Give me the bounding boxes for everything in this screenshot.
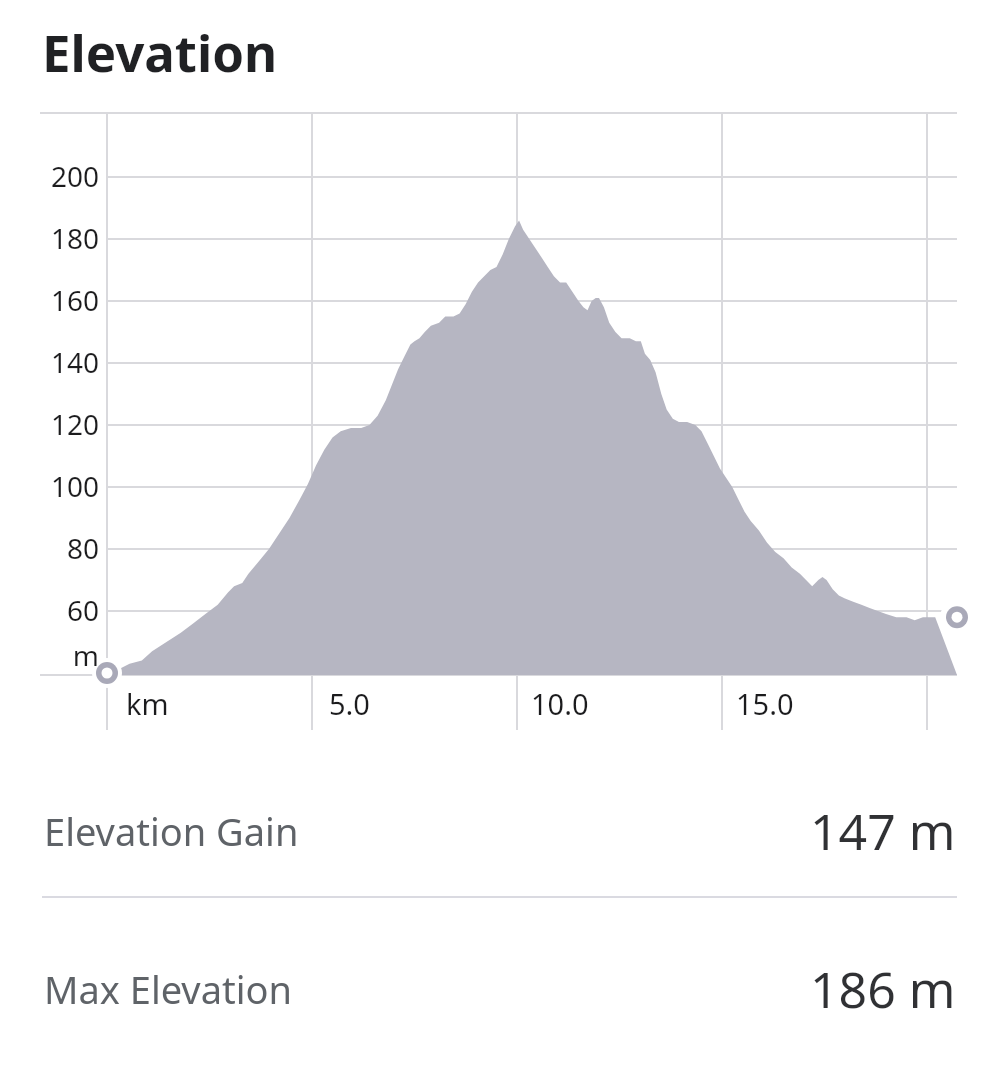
staticText: 100 xyxy=(0,467,99,505)
staticText: 10.0 xyxy=(531,684,589,723)
staticText: m xyxy=(0,636,99,674)
staticText: 15.0 xyxy=(736,684,794,723)
staticText: 180 xyxy=(0,219,99,257)
staticText: 186 m xyxy=(810,955,956,1023)
staticText: 80 xyxy=(0,529,99,567)
staticText: 5.0 xyxy=(329,684,370,723)
staticText: Max Elevation xyxy=(44,963,292,1015)
button[interactable]: Max Elevation xyxy=(0,899,1000,1079)
staticText: 160 xyxy=(0,281,99,319)
staticText: Elevation xyxy=(42,17,278,86)
staticText: km xyxy=(126,684,169,723)
staticText: Elevation Gain xyxy=(44,805,299,857)
staticText: 60 xyxy=(0,591,99,629)
staticText: 147 m xyxy=(810,797,956,865)
staticText: 200 xyxy=(0,157,99,195)
button[interactable]: Elevation Gain xyxy=(0,765,1000,897)
staticText: 140 xyxy=(0,343,99,381)
staticText: 120 xyxy=(0,405,99,443)
